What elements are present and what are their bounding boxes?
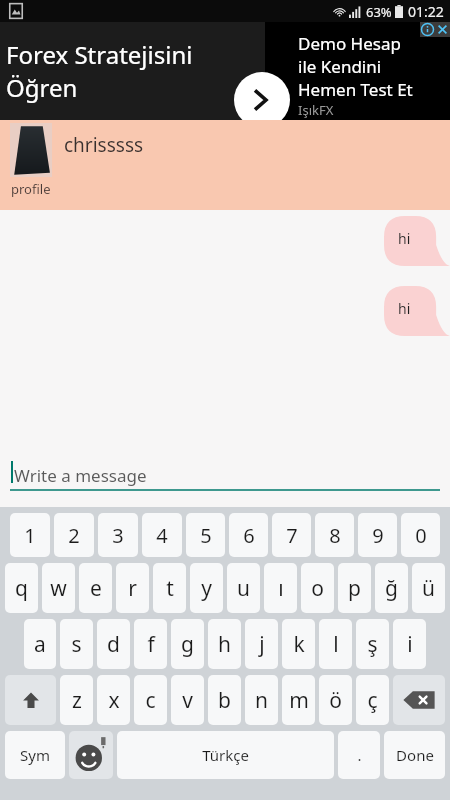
staticText: y	[201, 574, 212, 603]
staticText: b	[218, 686, 231, 715]
staticText: ile Kendini	[298, 55, 382, 78]
staticText: Türkçe	[202, 745, 249, 765]
button[interactable]: o	[301, 563, 334, 613]
staticText: 8	[329, 522, 341, 549]
button[interactable]: ç	[356, 675, 389, 725]
staticText: z	[72, 686, 82, 715]
staticText: Sym	[20, 745, 50, 765]
button[interactable]: t	[153, 563, 186, 613]
button[interactable]: j	[245, 619, 278, 669]
staticText: a	[34, 630, 46, 659]
staticText: l	[333, 630, 339, 659]
button[interactable]: Open ad	[234, 72, 290, 128]
staticText: g	[181, 630, 194, 659]
staticText: w	[50, 574, 67, 603]
staticText: Write a message	[14, 464, 147, 487]
button[interactable]: u	[227, 563, 260, 613]
button[interactable]: Emoji and voice input	[69, 731, 113, 779]
button[interactable]: 8	[315, 513, 354, 557]
button[interactable]: n	[245, 675, 278, 725]
button[interactable]: ş	[356, 619, 389, 669]
button[interactable]: 3	[98, 513, 138, 557]
button[interactable]: Sym	[5, 731, 65, 779]
button[interactable]: s	[60, 619, 93, 669]
staticText: h	[218, 630, 231, 659]
button[interactable]: 1	[10, 513, 50, 557]
button[interactable]: w	[42, 563, 75, 613]
staticText: e	[90, 574, 102, 603]
button[interactable]: 5	[186, 513, 225, 557]
button[interactable]: i	[393, 619, 426, 669]
button[interactable]: ö	[319, 675, 352, 725]
staticText: q	[15, 574, 28, 603]
button[interactable]: Ad info	[420, 22, 435, 37]
button[interactable]: l	[319, 619, 352, 669]
button[interactable]: a	[24, 619, 56, 669]
staticText: o	[311, 574, 324, 603]
button[interactable]: e	[79, 563, 112, 613]
button[interactable]: 4	[142, 513, 182, 557]
button[interactable]: b	[208, 675, 241, 725]
button[interactable]: f	[134, 619, 167, 669]
button[interactable]: .	[338, 731, 380, 779]
staticText: hi	[398, 229, 411, 248]
button[interactable]: 0	[401, 513, 440, 557]
staticText: u	[237, 574, 250, 603]
staticText: 5	[200, 522, 212, 549]
button[interactable]: Done	[384, 731, 445, 779]
staticText: f	[147, 630, 155, 659]
button[interactable]: 7	[272, 513, 311, 557]
button[interactable]: Backspace	[393, 675, 445, 725]
button[interactable]: d	[97, 619, 130, 669]
button[interactable]: ğ	[375, 563, 408, 613]
staticText: 6	[243, 522, 255, 549]
button[interactable]: ı	[264, 563, 297, 613]
button[interactable]: g	[171, 619, 204, 669]
staticText: 63%	[366, 3, 392, 21]
button[interactable]: z	[60, 675, 93, 725]
staticText: chrisssss	[64, 132, 144, 158]
button[interactable]: 9	[358, 513, 397, 557]
staticText: ü	[422, 574, 435, 603]
staticText: Done	[396, 745, 434, 765]
staticText: 4	[156, 522, 168, 549]
button[interactable]: 6	[229, 513, 268, 557]
button[interactable]: p	[338, 563, 371, 613]
staticText: i	[407, 630, 413, 659]
button[interactable]: ü	[412, 563, 445, 613]
button[interactable]: Shift	[5, 675, 56, 725]
button[interactable]: hi	[384, 216, 450, 266]
staticText: Hemen Test Et	[298, 78, 413, 101]
staticText: ğ	[385, 574, 398, 603]
button[interactable]: chrisssss	[0, 120, 450, 210]
staticText: v	[182, 686, 193, 715]
button[interactable]: k	[282, 619, 315, 669]
staticText: c	[145, 686, 156, 715]
staticText: IşıkFX	[298, 101, 334, 119]
button[interactable]: y	[190, 563, 223, 613]
staticText: 01:22	[408, 2, 444, 21]
staticText: r	[128, 574, 137, 603]
button[interactable]: c	[134, 675, 167, 725]
button[interactable]: v	[171, 675, 204, 725]
button[interactable]: 2	[54, 513, 94, 557]
button[interactable]: q	[5, 563, 38, 613]
staticText: k	[293, 630, 305, 659]
staticText: profile	[11, 180, 51, 198]
button[interactable]: h	[208, 619, 241, 669]
button[interactable]: hi	[384, 286, 450, 336]
staticText: ş	[367, 630, 378, 659]
staticText: j	[259, 630, 265, 659]
staticText: t	[166, 574, 174, 603]
staticText: n	[255, 686, 268, 715]
button[interactable]: Türkçe	[117, 731, 334, 779]
button[interactable]: Advertisement	[0, 22, 450, 120]
button[interactable]: m	[282, 675, 315, 725]
staticText: ö	[329, 686, 342, 715]
button[interactable]: Close ad	[435, 22, 450, 37]
staticText: ç	[367, 686, 378, 715]
button[interactable]: r	[116, 563, 149, 613]
button[interactable]: x	[97, 675, 130, 725]
staticText: s	[71, 630, 82, 659]
staticText: 9	[372, 522, 384, 549]
